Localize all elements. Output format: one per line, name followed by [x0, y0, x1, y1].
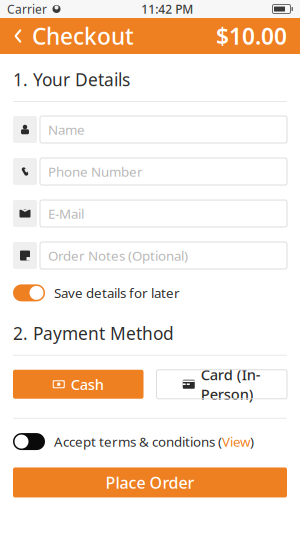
button[interactable]: Cash [13, 370, 143, 399]
staticText: ) [250, 433, 254, 450]
staticText: Checkout [32, 21, 134, 51]
staticText: Card (In-Person) [201, 365, 261, 404]
staticText: Accept terms & conditions ( [54, 433, 222, 450]
staticText: Save details for later [54, 284, 180, 302]
button[interactable]: Place Order [13, 467, 287, 497]
staticText: Carrier [7, 1, 47, 17]
staticText: View [222, 433, 250, 450]
staticText: Cash [71, 374, 104, 394]
staticText: $10.00 [216, 21, 287, 51]
staticText: 1. Your Details [13, 68, 130, 91]
button[interactable]: Back [4, 18, 32, 54]
button[interactable]: Save details for later [13, 284, 287, 302]
button[interactable]: Card (In-Person) [156, 370, 287, 399]
staticText: Order Notes (Optional) [48, 247, 188, 264]
staticText: Phone Number [48, 163, 143, 180]
staticText: Name [48, 121, 85, 138]
staticText: 2. Payment Method [13, 322, 174, 345]
button[interactable]: Checkout [32, 21, 134, 51]
staticText: Place Order [105, 472, 194, 493]
staticText: E-Mail [48, 205, 84, 222]
button[interactable]: Accept terms & conditions ( [13, 433, 287, 450]
staticText: 11:42 PM [141, 1, 193, 17]
